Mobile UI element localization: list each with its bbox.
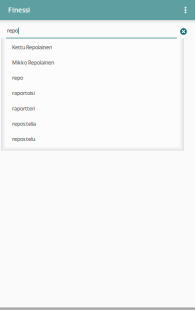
staticText: raportoisi — [12, 89, 35, 97]
staticText: raportteri — [12, 105, 35, 112]
button[interactable]: repostelu — [6, 131, 179, 147]
button[interactable]: raportteri — [6, 101, 179, 116]
staticText: repostelu — [12, 135, 35, 142]
button[interactable]: Clear search — [178, 26, 189, 37]
staticText: repostelia — [12, 120, 36, 127]
button[interactable]: raportoisi — [6, 85, 179, 101]
button[interactable]: repo — [6, 70, 179, 85]
button[interactable]: Mikko Repolainen — [6, 55, 179, 70]
staticText: Mikko Repolainen — [12, 59, 54, 66]
staticText: repo — [12, 74, 23, 81]
staticText: Finessi — [8, 6, 30, 14]
button[interactable]: More options — [179, 0, 192, 20]
button[interactable]: Kettu Repolainen — [6, 39, 179, 55]
button[interactable]: repostelia — [6, 116, 179, 131]
staticText: repo — [7, 27, 18, 34]
staticText: Kettu Repolainen — [12, 44, 52, 51]
